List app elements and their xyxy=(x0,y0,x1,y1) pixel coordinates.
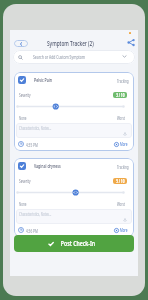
staticText: Symptom Tracker (2) xyxy=(47,39,94,48)
button[interactable] xyxy=(16,123,132,138)
staticText: Pelvic Pain xyxy=(34,76,52,84)
staticText: 4:36 PM xyxy=(26,228,38,234)
staticText: 3 / 10 xyxy=(116,92,125,98)
staticText: Severity xyxy=(19,92,31,99)
button[interactable] xyxy=(13,50,135,64)
staticText: Worst xyxy=(117,115,125,121)
staticText: Characteristics, Notes... xyxy=(19,125,52,131)
staticText: 5 / 10 xyxy=(116,178,125,184)
staticText: More xyxy=(120,227,128,233)
staticText: 4:35 PM xyxy=(26,142,38,148)
staticText: None xyxy=(19,115,27,121)
staticText: None xyxy=(19,201,27,207)
staticText: Severity xyxy=(19,178,31,185)
staticText: More xyxy=(120,141,128,147)
button[interactable]: More xyxy=(114,227,132,233)
staticText: Worst xyxy=(117,201,125,207)
staticText: Post Check-In xyxy=(61,239,95,248)
staticText: Vaginal dryness xyxy=(34,162,61,170)
button[interactable]: Pelvic Pain xyxy=(14,72,134,151)
button[interactable]: Share report xyxy=(125,30,139,50)
staticText: Tracking xyxy=(117,78,129,84)
button[interactable]: Back xyxy=(14,40,28,47)
button[interactable]: More xyxy=(114,141,132,147)
button[interactable] xyxy=(16,209,132,224)
staticText: Characteristics, Notes... xyxy=(19,211,52,217)
button[interactable]: Post Check-In xyxy=(14,235,134,252)
staticText: Search or Add Custom Symptom xyxy=(33,54,85,61)
button[interactable]: Vaginal dryness xyxy=(14,158,134,237)
staticText: Tracking xyxy=(117,164,129,170)
